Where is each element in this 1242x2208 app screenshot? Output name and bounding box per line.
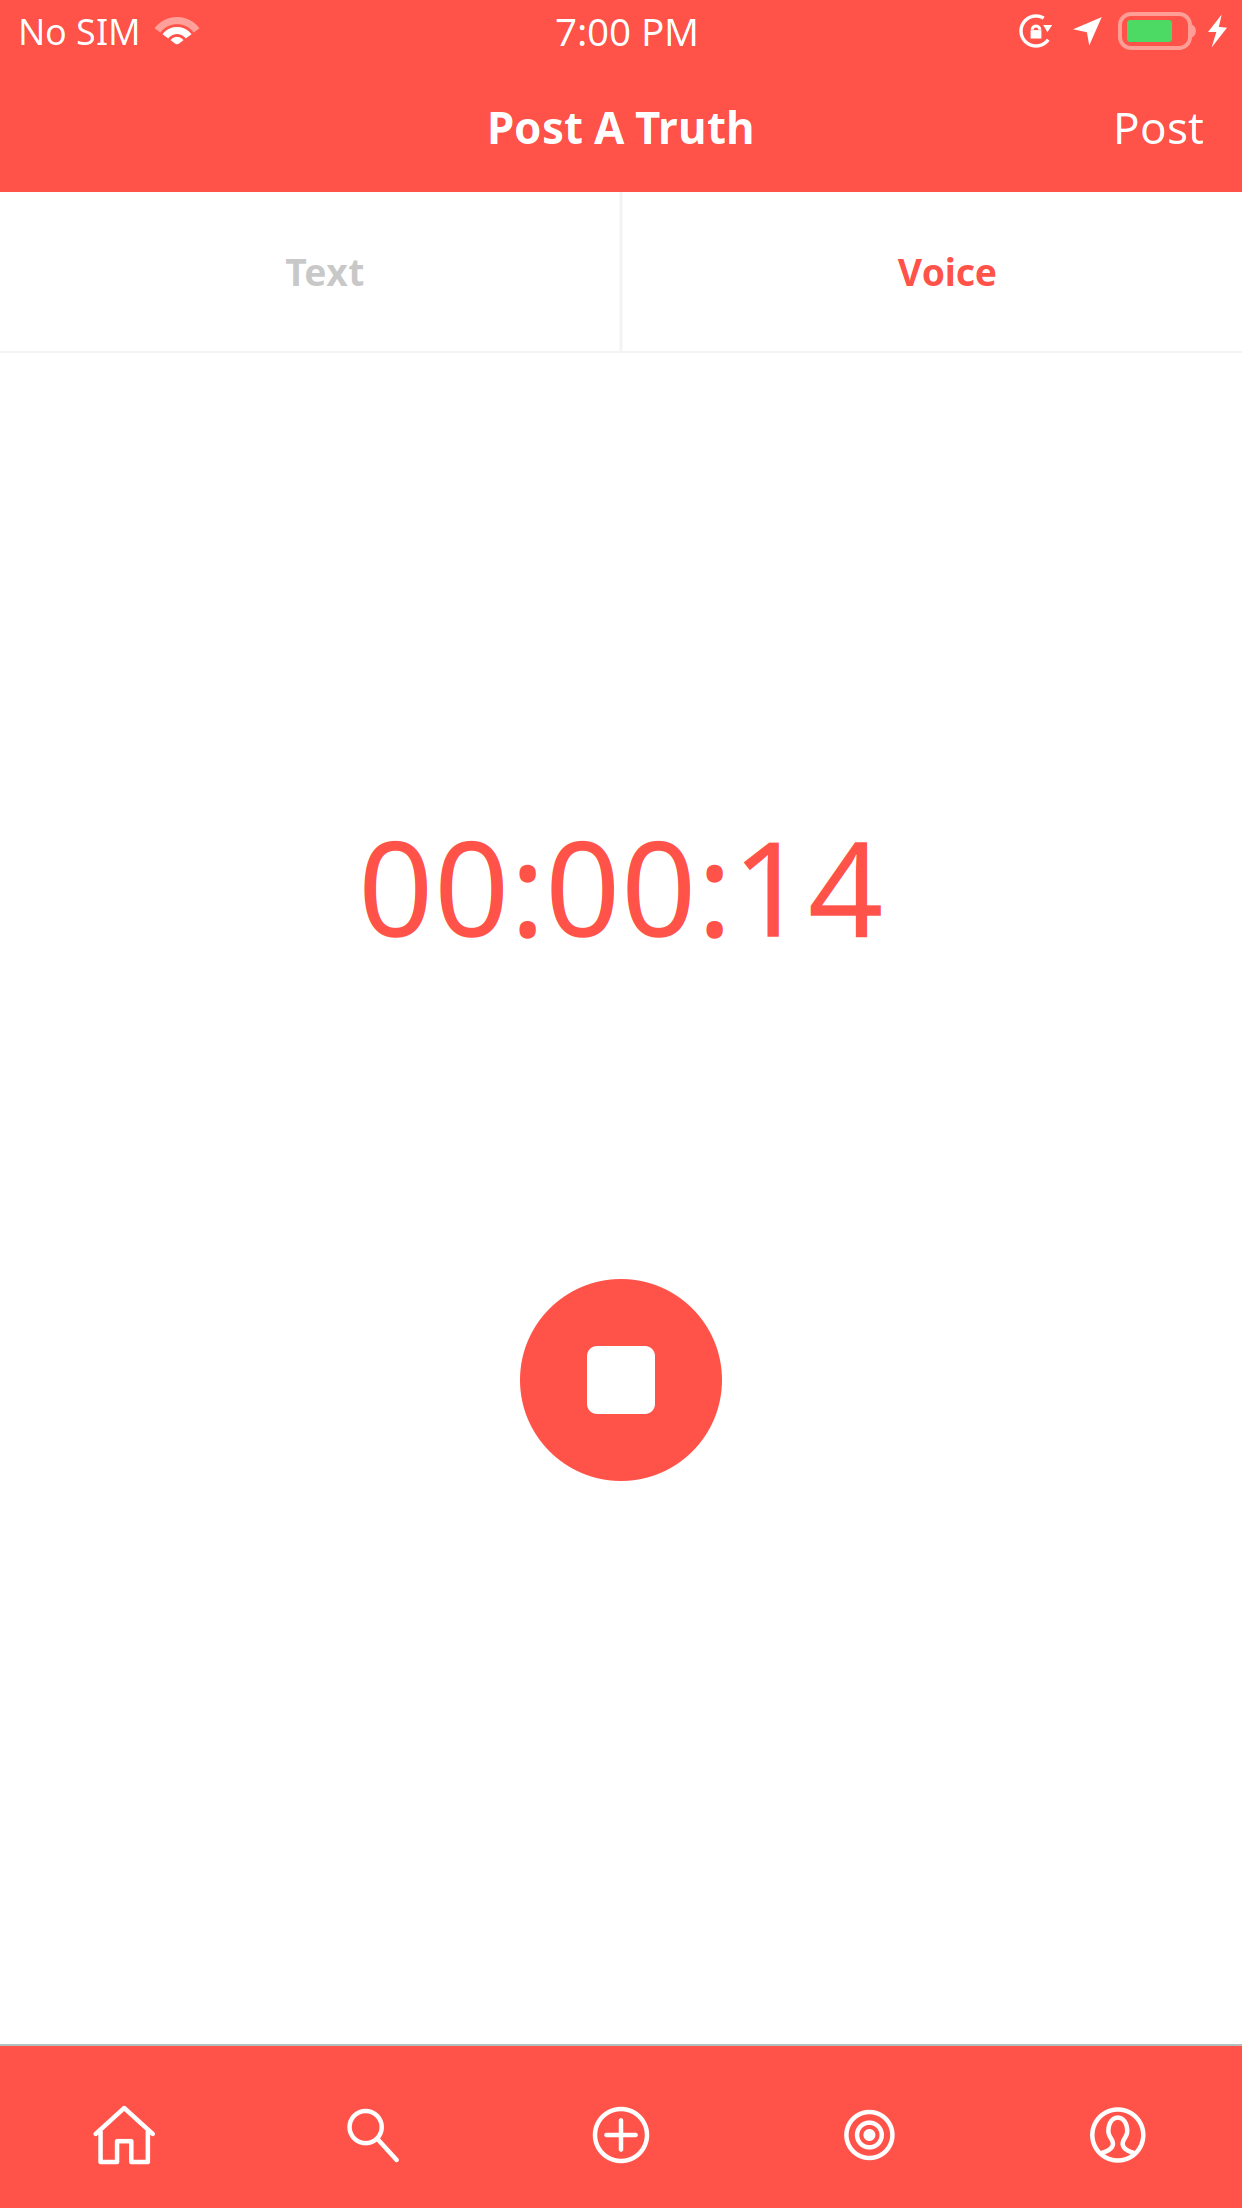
- button[interactable]: Voice: [622, 192, 1242, 351]
- button[interactable]: Search: [248, 2068, 497, 2202]
- staticText: 00:00:14: [358, 798, 884, 973]
- button[interactable]: Stop recording: [520, 1279, 722, 1481]
- staticText: Voice: [898, 247, 997, 296]
- button[interactable]: New post: [497, 2068, 745, 2202]
- staticText: Post A Truth: [487, 98, 755, 156]
- staticText: Text: [285, 247, 364, 296]
- staticText: 7:00 PM: [555, 5, 699, 57]
- button[interactable]: Discover: [745, 2068, 994, 2202]
- staticText: Post: [1113, 98, 1204, 156]
- button[interactable]: Home: [0, 2068, 248, 2202]
- button[interactable]: Post: [1093, 82, 1224, 172]
- staticText: No SIM: [18, 7, 141, 55]
- button[interactable]: Text: [0, 192, 619, 351]
- button[interactable]: Profile: [994, 2068, 1242, 2202]
